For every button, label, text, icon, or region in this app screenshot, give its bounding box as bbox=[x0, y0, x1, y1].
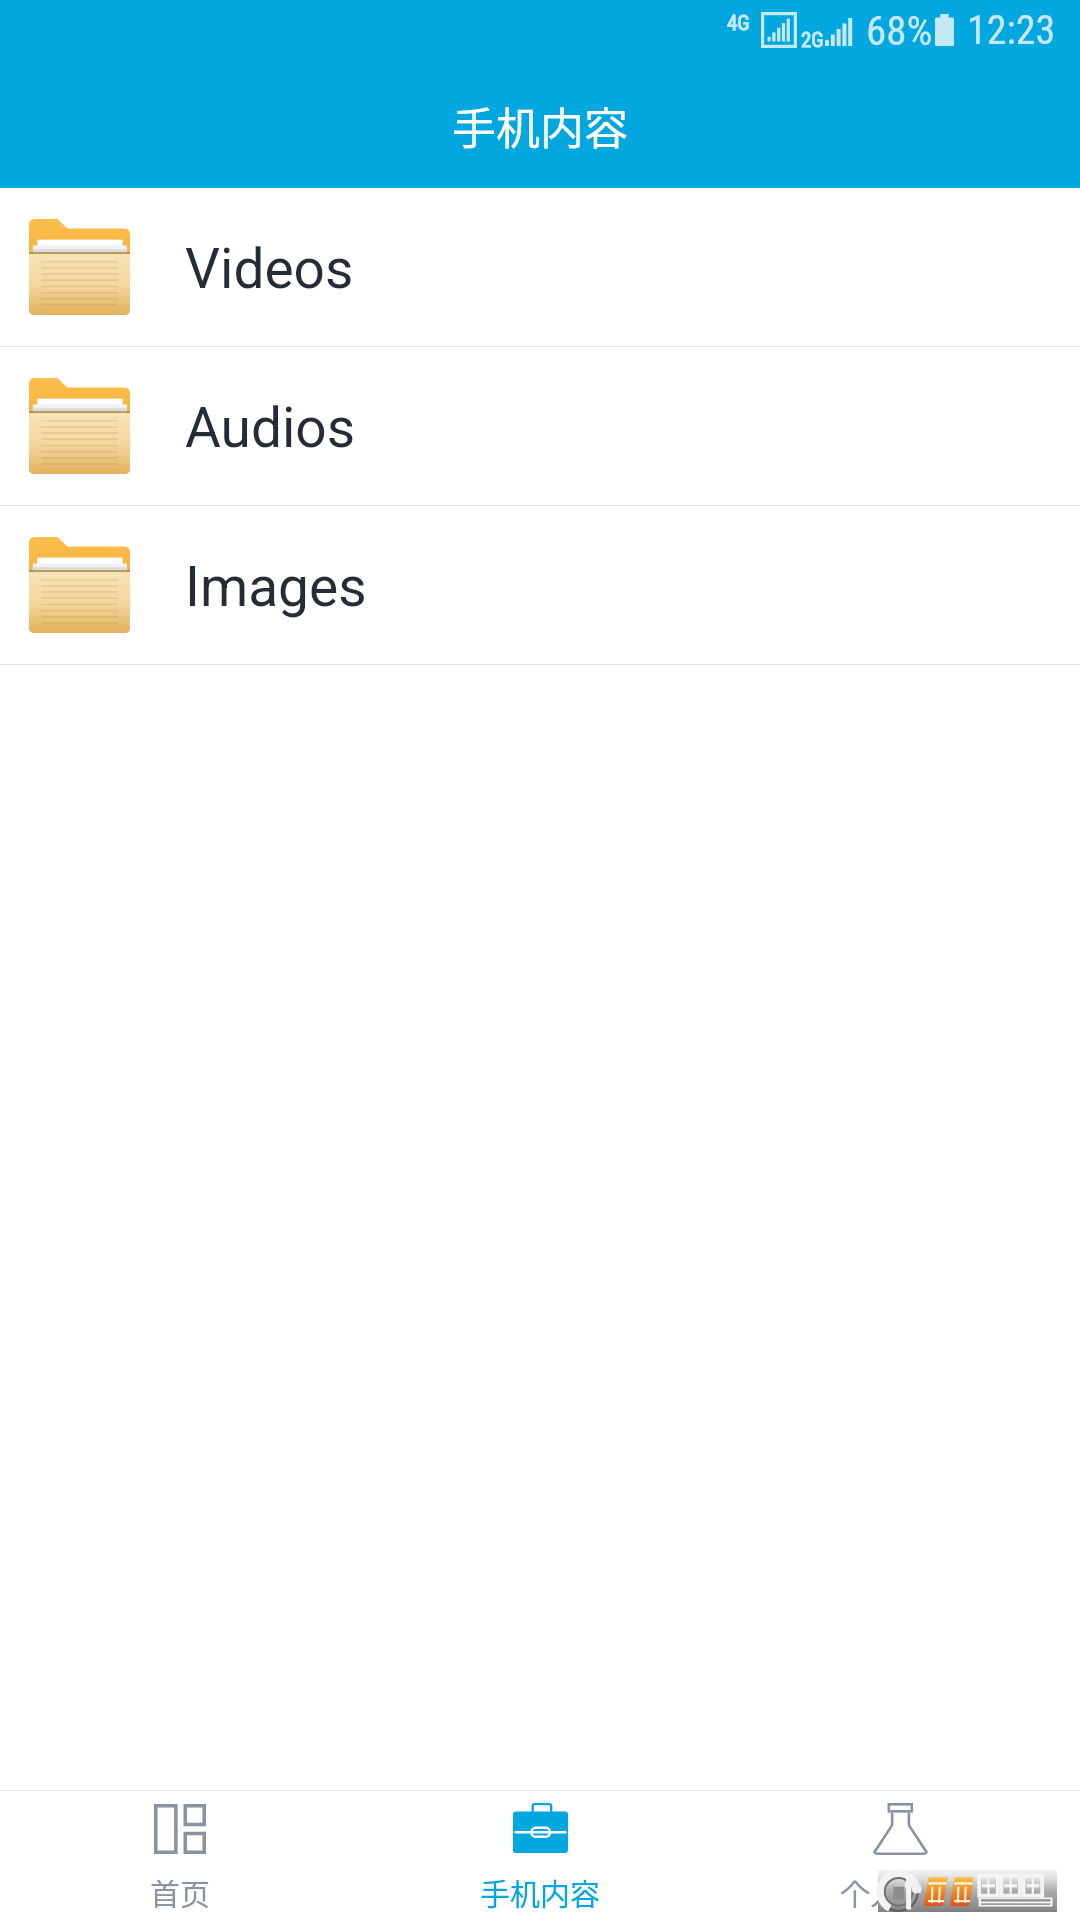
staticText: 2G bbox=[801, 28, 824, 53]
staticText: Videos bbox=[185, 237, 354, 301]
staticText: 首页 bbox=[150, 1870, 210, 1913]
staticText: 12:23 bbox=[967, 7, 1056, 54]
other: Home bbox=[154, 1804, 206, 1854]
button[interactable]: Phone content bbox=[360, 1791, 720, 1841]
staticText: 68% bbox=[866, 7, 933, 55]
staticText: 手机内容 bbox=[452, 94, 628, 158]
button[interactable]: Profile bbox=[720, 1791, 1080, 1843]
staticText: 手机内容 bbox=[480, 1870, 600, 1913]
staticText: 4G bbox=[727, 11, 750, 36]
other: Profile bbox=[873, 1803, 928, 1855]
staticText: Audios bbox=[185, 396, 356, 460]
button[interactable]: Videos bbox=[0, 188, 1080, 347]
button[interactable]: Audios bbox=[0, 347, 1080, 506]
staticText: 个人中心 bbox=[840, 1870, 960, 1913]
other: Phone content bbox=[513, 1803, 568, 1853]
staticText: Images bbox=[185, 555, 367, 619]
button[interactable]: Images bbox=[0, 506, 1080, 665]
button[interactable]: Home bbox=[0, 1791, 360, 1841]
